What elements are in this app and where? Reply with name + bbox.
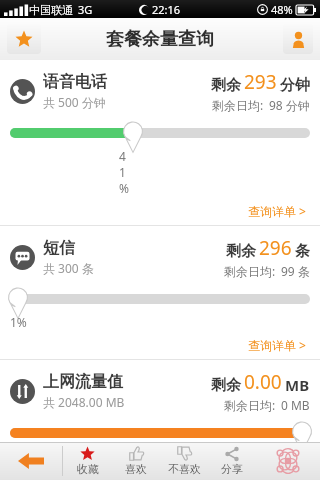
- staticText: 48%: [271, 2, 293, 17]
- staticText: 语音电话: [43, 72, 107, 92]
- button[interactable]: 短信: [0, 226, 320, 359]
- button[interactable]: 收藏: [63, 442, 112, 480]
- button[interactable]: 分享: [208, 442, 256, 480]
- button[interactable]: 上网流量值: [0, 360, 320, 442]
- staticText: 喜欢: [125, 462, 147, 476]
- button[interactable]: 查询详单 >: [244, 335, 310, 355]
- staticText: 剩余: [226, 242, 256, 261]
- staticText: 中国联通: [29, 3, 73, 17]
- staticText: 22:16: [152, 2, 181, 17]
- staticText: 0 MB: [281, 397, 310, 413]
- staticText: 不喜欢: [168, 462, 201, 476]
- staticText: 查询详单 >: [248, 337, 306, 353]
- button[interactable]: 中国联通: [256, 442, 320, 480]
- staticText: 查询详单 >: [248, 203, 306, 219]
- button[interactable]: [10, 424, 310, 438]
- staticText: 98 分钟: [269, 97, 310, 113]
- button[interactable]: 个人中心: [283, 24, 313, 54]
- button[interactable]: 返回: [0, 442, 62, 480]
- button[interactable]: [10, 124, 310, 146]
- staticText: 剩余日均:: [212, 97, 264, 113]
- staticText: 共 2048.00 MB: [43, 394, 125, 410]
- staticText: 1%: [10, 314, 27, 330]
- staticText: 剩余日均:: [224, 397, 276, 413]
- staticText: 293: [244, 69, 277, 95]
- button[interactable]: 语音电话: [0, 60, 320, 225]
- staticText: 收藏: [77, 462, 99, 476]
- staticText: 共 500 分钟: [43, 94, 106, 110]
- staticText: 剩余: [211, 376, 241, 395]
- staticText: 分钟: [280, 76, 310, 95]
- button[interactable]: 查询详单 >: [244, 201, 310, 221]
- button[interactable]: 收藏: [7, 24, 41, 54]
- staticText: 剩余日均:: [224, 263, 276, 279]
- staticText: 3G: [78, 2, 93, 17]
- staticText: 套餐余量查询: [106, 28, 214, 51]
- staticText: 上网流量值: [43, 372, 123, 392]
- button[interactable]: 喜欢: [112, 442, 160, 480]
- staticText: 剩余: [211, 76, 241, 95]
- staticText: 条: [295, 242, 310, 261]
- staticText: 分享: [221, 462, 243, 476]
- staticText: 0.00: [244, 369, 282, 395]
- staticText: 短信: [43, 238, 75, 258]
- staticText: 99 条: [281, 263, 310, 279]
- staticText: 296: [259, 235, 292, 261]
- button[interactable]: 不喜欢: [160, 442, 208, 480]
- staticText: 共 300 条: [43, 260, 94, 276]
- button[interactable]: [10, 290, 310, 312]
- staticText: MB: [285, 375, 310, 395]
